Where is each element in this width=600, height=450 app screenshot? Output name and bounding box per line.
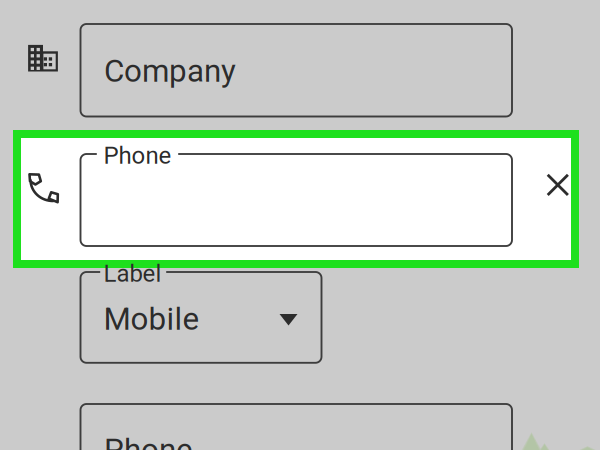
- staticText: Label: [103, 259, 161, 287]
- button[interactable]: Label: [79, 271, 322, 364]
- staticText: Mobile: [103, 301, 199, 337]
- staticText: Company: [104, 53, 236, 89]
- staticText: Phone: [104, 432, 193, 450]
- button[interactable]: Phone: [79, 403, 513, 450]
- button[interactable]: Clear phone number: [546, 173, 569, 196]
- button[interactable]: Phone: [79, 153, 513, 247]
- staticText: Phone: [104, 141, 172, 169]
- button[interactable]: Phone: [28, 173, 59, 203]
- button[interactable]: Company: [79, 23, 513, 117]
- button[interactable]: Company: [28, 45, 58, 71]
